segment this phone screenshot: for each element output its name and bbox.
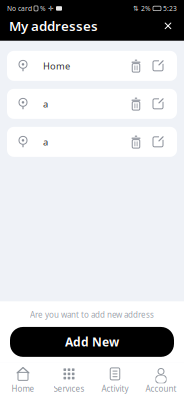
staticText: ✛	[48, 5, 54, 12]
staticText: Services	[53, 383, 84, 394]
staticText: Home	[11, 383, 34, 394]
button[interactable]: Close	[158, 16, 178, 36]
staticText: No card	[7, 4, 32, 13]
button[interactable]: Add New	[10, 327, 174, 357]
staticText: Account	[145, 383, 176, 394]
staticText: %	[40, 4, 46, 13]
staticText: Are you want to add new address	[30, 309, 154, 320]
staticText: 2%	[141, 4, 151, 13]
button[interactable]: Home	[0, 363, 46, 397]
button[interactable]: Delete a	[125, 128, 147, 156]
staticText: Activity	[101, 383, 128, 394]
button[interactable]: Account	[138, 363, 184, 397]
button[interactable]: Delete a	[125, 90, 147, 118]
staticText: a	[43, 136, 48, 148]
staticText: a	[43, 98, 48, 110]
button[interactable]: Edit a	[147, 128, 169, 156]
staticText: Add New	[65, 334, 119, 350]
staticText: My addresses	[9, 17, 98, 35]
staticText: 5:23	[163, 4, 177, 13]
button[interactable]: Delete Home	[125, 52, 147, 80]
staticText: ⇅	[133, 5, 139, 12]
button[interactable]: Edit Home	[147, 52, 169, 80]
button[interactable]: Edit a	[147, 90, 169, 118]
staticText: Home	[43, 60, 70, 72]
button[interactable]: Services	[46, 363, 92, 397]
button[interactable]: Activity	[92, 363, 138, 397]
